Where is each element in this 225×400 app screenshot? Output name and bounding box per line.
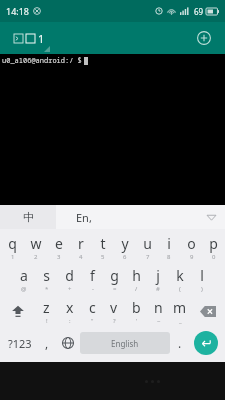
staticText: 9: [190, 253, 194, 261]
staticText: i: [167, 234, 171, 253]
button[interactable]: Shift: [1, 295, 35, 327]
staticText: a: [20, 266, 28, 285]
staticText: u0_a106@android:/ $: [2, 56, 82, 66]
button[interactable]: s: [35, 263, 58, 295]
staticText: z: [43, 298, 50, 317]
staticText: 1: [11, 253, 15, 261]
button[interactable]: f: [81, 263, 103, 295]
button[interactable]: t: [92, 231, 114, 263]
staticText: f: [90, 266, 95, 285]
staticText: t: [100, 234, 106, 253]
staticText: =: [113, 285, 117, 293]
button[interactable]: r: [70, 231, 92, 263]
staticText: 7: [146, 253, 150, 261]
button[interactable]: Enter: [194, 331, 218, 355]
button[interactable]: o: [180, 231, 202, 263]
button[interactable]: ?123: [2, 327, 37, 359]
button[interactable]: u0_a106@android:/ $: [0, 54, 225, 205]
staticText: m: [173, 298, 187, 317]
button[interactable]: n: [147, 295, 169, 327]
button[interactable]: c: [81, 295, 103, 327]
button[interactable]: En,: [56, 205, 112, 229]
staticText: 69: [194, 6, 204, 17]
button[interactable]: Change language: [56, 327, 80, 359]
button[interactable]: Session 1: [8, 28, 51, 49]
staticText: x: [66, 298, 74, 317]
staticText: *: [45, 285, 49, 293]
staticText: w: [30, 234, 42, 253]
staticText: h: [132, 266, 141, 285]
button[interactable]: Hide keyboard: [197, 205, 225, 229]
staticText: !: [46, 317, 48, 325]
staticText: p: [209, 234, 218, 253]
staticText: ?: [113, 317, 116, 325]
staticText: d: [65, 266, 74, 285]
staticText: v: [110, 298, 118, 317]
staticText: (: [179, 285, 181, 293]
button[interactable]: k: [169, 263, 191, 295]
staticText: 14:18: [6, 5, 30, 17]
staticText: u: [143, 234, 152, 253]
button[interactable]: v: [103, 295, 125, 327]
button[interactable]: i: [158, 231, 180, 263]
button[interactable]: h: [125, 263, 147, 295]
staticText: @: [21, 285, 27, 293]
button[interactable]: a: [12, 263, 35, 295]
staticText: l: [200, 266, 204, 285]
staticText: _: [179, 317, 182, 325]
button[interactable]: m: [169, 295, 191, 327]
staticText: -: [92, 285, 94, 293]
button[interactable]: g: [103, 263, 125, 295]
button[interactable]: b: [125, 295, 147, 327]
staticText: o: [187, 234, 196, 253]
staticText: e: [55, 234, 63, 253]
staticText: En,: [76, 210, 92, 225]
staticText: s: [43, 266, 50, 285]
button[interactable]: y: [114, 231, 136, 263]
staticText: 2: [34, 253, 38, 261]
staticText: .: [178, 335, 182, 351]
button[interactable]: p: [202, 231, 224, 263]
button[interactable]: English: [80, 332, 170, 354]
staticText: 3: [57, 253, 61, 261]
staticText: g: [110, 266, 119, 285]
staticText: n: [154, 298, 163, 317]
staticText: ': [136, 317, 138, 325]
button[interactable]: x: [58, 295, 81, 327]
staticText: 4: [79, 253, 83, 261]
staticText: q: [8, 234, 17, 253]
button[interactable]: u: [136, 231, 158, 263]
button[interactable]: l: [191, 263, 213, 295]
staticText: +: [68, 285, 72, 293]
button[interactable]: q: [1, 231, 24, 263]
staticText: ,: [45, 335, 49, 351]
staticText: 5: [101, 253, 105, 261]
staticText: ?123: [8, 336, 32, 351]
staticText: /: [135, 285, 138, 293]
staticText: ): [201, 285, 203, 293]
button[interactable]: z: [35, 295, 58, 327]
button[interactable]: d: [58, 263, 81, 295]
staticText: 6: [123, 253, 127, 261]
button[interactable]: j: [147, 263, 169, 295]
button[interactable]: ,: [37, 327, 56, 359]
staticText: r: [78, 234, 84, 253]
staticText: j: [156, 266, 160, 285]
button[interactable]: Backspace: [191, 295, 224, 327]
staticText: c: [89, 298, 96, 317]
button[interactable]: New session: [191, 25, 217, 51]
button[interactable]: w: [24, 231, 47, 263]
staticText: 1: [38, 31, 45, 46]
staticText: ": [91, 317, 94, 325]
staticText: #: [156, 285, 160, 293]
staticText: 0: [212, 253, 216, 261]
button[interactable]: .: [170, 327, 189, 359]
staticText: y: [121, 234, 129, 253]
staticText: :: [69, 317, 71, 325]
staticText: ~: [157, 317, 161, 325]
staticText: 中: [23, 210, 34, 224]
staticText: b: [132, 298, 141, 317]
button[interactable]: 中: [0, 205, 56, 229]
staticText: 8: [167, 253, 171, 261]
button[interactable]: e: [47, 231, 70, 263]
